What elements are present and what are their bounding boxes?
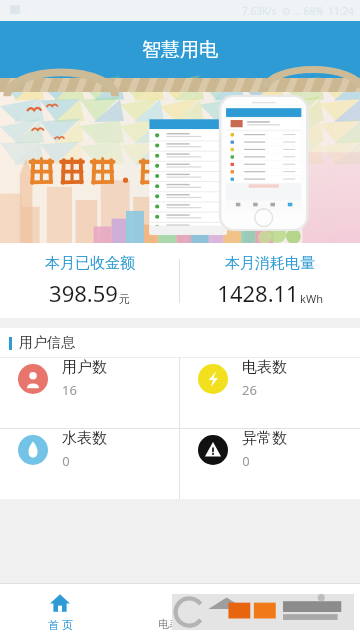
staticText: 7.63K/s ⊙ ... 68% 11:24 (242, 4, 354, 18)
button[interactable]: 用户数 (0, 358, 179, 399)
staticText: 电表数 (242, 358, 287, 377)
staticText: 本月已收金额 (45, 254, 135, 273)
button[interactable]: Tab (240, 583, 360, 640)
staticText: 0 (62, 452, 70, 470)
staticText: 用户信息 (19, 334, 75, 352)
staticText: 用户数 (62, 358, 107, 377)
button[interactable]: 异常数 (180, 429, 360, 470)
staticText: 元 (119, 292, 130, 306)
staticText: 26 (242, 381, 257, 399)
staticText: 水表数 (62, 429, 107, 448)
staticText: 0 (242, 452, 250, 470)
staticText: 16 (62, 381, 77, 399)
button[interactable]: 本月已收金额 (0, 254, 179, 308)
staticText: 398.59 (49, 278, 118, 308)
button[interactable]: 本月消耗电量 (180, 254, 360, 308)
staticText: kWh (300, 291, 323, 306)
staticText: 本月消耗电量 (225, 254, 315, 273)
staticText: 智慧用电 (142, 38, 218, 62)
staticText: 首 页 (48, 617, 73, 632)
staticText: 1428.11 (217, 278, 299, 308)
staticText: 异常数 (242, 429, 287, 448)
button[interactable]: 首 页 (0, 583, 120, 640)
staticText: 电表列表 (158, 617, 202, 631)
button[interactable]: 水表数 (0, 429, 179, 470)
button[interactable]: 电表数 (180, 358, 360, 399)
button[interactable]: 电表列表 (120, 583, 240, 640)
